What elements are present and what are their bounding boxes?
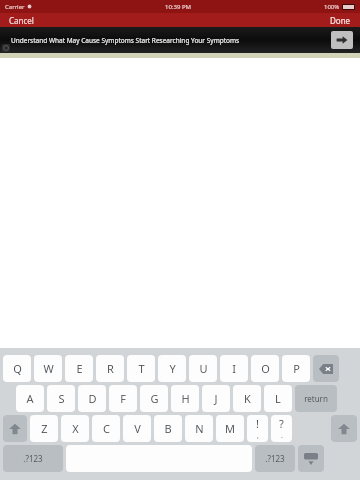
button[interactable]: Go	[331, 31, 353, 49]
staticText: V	[134, 421, 141, 436]
button[interactable]: Y	[158, 355, 186, 382]
button[interactable]: O	[251, 355, 279, 382]
staticText: O	[261, 361, 270, 376]
button[interactable]: Cancel	[9, 15, 34, 26]
staticText: G	[150, 391, 159, 406]
button[interactable]: K	[233, 385, 261, 412]
staticText: Done	[330, 15, 351, 26]
staticText: Understand What May Cause Symptoms Start…	[11, 36, 240, 45]
staticText: J	[214, 391, 218, 406]
staticText: X	[72, 421, 79, 436]
button[interactable]: Done	[330, 15, 351, 26]
button[interactable]: W	[34, 355, 62, 382]
staticText: D	[88, 391, 97, 406]
staticText: M	[225, 421, 235, 436]
button[interactable]: N	[185, 415, 213, 442]
staticText: .?123	[23, 453, 43, 464]
button[interactable]: Shift	[3, 415, 27, 442]
staticText: return	[304, 393, 328, 404]
staticText: F	[120, 391, 126, 406]
button[interactable]: Shift	[331, 415, 357, 442]
button[interactable]: S	[47, 385, 75, 412]
staticText: 10:39 PM	[165, 3, 191, 11]
staticText: E	[76, 361, 83, 376]
button[interactable]: G	[140, 385, 168, 412]
button[interactable]: .?123	[255, 445, 295, 472]
button[interactable]: P	[282, 355, 310, 382]
button[interactable]: U	[189, 355, 217, 382]
staticText: L	[275, 391, 281, 406]
staticText: A	[26, 391, 34, 406]
button[interactable]: Z	[30, 415, 58, 442]
staticText: H	[181, 391, 190, 406]
staticText: T	[138, 361, 145, 376]
staticText: P	[293, 361, 300, 376]
staticText: U	[199, 361, 208, 376]
staticText: ,	[257, 431, 259, 441]
button[interactable]: B	[154, 415, 182, 442]
button[interactable]: A	[16, 385, 44, 412]
button[interactable]: M	[216, 415, 244, 442]
staticText: Q	[13, 361, 22, 376]
staticText: 100%	[324, 3, 340, 11]
staticText: Carrier	[5, 3, 25, 11]
staticText: S	[58, 391, 65, 406]
button[interactable]: Delete	[313, 355, 339, 382]
button[interactable]: I	[220, 355, 248, 382]
staticText: N	[195, 421, 204, 436]
staticText: B	[164, 421, 172, 436]
button[interactable]: return	[295, 385, 337, 412]
button[interactable]: C	[92, 415, 120, 442]
staticText: I	[232, 361, 236, 376]
staticText: W	[43, 361, 54, 376]
button[interactable]: L	[264, 385, 292, 412]
staticText: R	[107, 361, 114, 376]
button[interactable]: E	[65, 355, 93, 382]
button[interactable]: F	[109, 385, 137, 412]
staticText: .?123	[265, 453, 285, 464]
staticText: Cancel	[9, 15, 34, 26]
button[interactable]: R	[96, 355, 124, 382]
button[interactable]: D	[78, 385, 106, 412]
button[interactable]: Hide keyboard	[298, 445, 324, 472]
button[interactable]: ?	[271, 415, 292, 442]
button[interactable]: V	[123, 415, 151, 442]
button[interactable]: X	[61, 415, 89, 442]
staticText: ?	[279, 416, 284, 431]
button[interactable]: Info	[2, 44, 10, 52]
staticText: C	[103, 421, 110, 436]
staticText: Y	[169, 361, 176, 376]
button[interactable]: !	[247, 415, 268, 442]
staticText: .	[281, 431, 283, 441]
button[interactable]: H	[171, 385, 199, 412]
button[interactable]: Q	[3, 355, 31, 382]
button[interactable]: T	[127, 355, 155, 382]
staticText: !	[256, 416, 259, 431]
staticText: K	[244, 391, 251, 406]
staticText: Z	[41, 421, 48, 436]
button[interactable]: J	[202, 385, 230, 412]
button[interactable]: .?123	[3, 445, 63, 472]
